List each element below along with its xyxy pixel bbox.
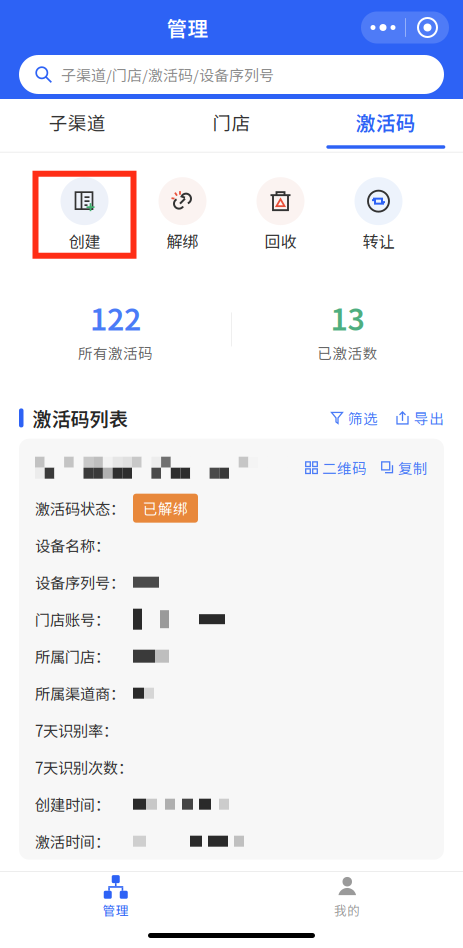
button[interactable]: 导出 [396,407,444,428]
staticText: 激活时间： [35,830,110,852]
staticText: 管理 [103,901,129,919]
button[interactable]: 复制 [381,457,428,478]
staticText: 子渠道/门店/激活码/设备序列号 [61,64,274,85]
button[interactable]: 解绑 [133,174,231,256]
staticText: 我的 [334,901,360,919]
button[interactable]: 子渠道 [0,100,154,151]
staticText: 7天识别次数： [35,756,133,778]
staticText: 门店 [212,109,250,135]
staticText: 筛选 [348,407,378,428]
button[interactable]: 子渠道/门店/激活码/设备序列号 [19,55,444,94]
staticText: 所属门店： [35,645,110,667]
staticText: 13 [330,296,364,339]
staticText: 管理 [166,13,208,42]
button[interactable]: 激活码 [309,99,463,152]
staticText: 激活码 [356,108,416,136]
staticText: 7天识别率： [35,719,118,741]
staticText: 门店账号： [35,608,110,630]
staticText: 创建 [68,229,100,252]
staticText: 设备序列号： [35,571,125,593]
staticText: 转让 [362,229,394,252]
button[interactable]: 回收 [231,174,329,256]
staticText: 创建时间： [35,793,110,815]
staticText: 122 [90,296,141,339]
staticText: 已解绑 [143,498,188,519]
staticText: 设备名称： [35,534,110,556]
button[interactable]: 创建 [35,174,133,256]
button[interactable]: 门店 [154,100,309,151]
button[interactable]: 筛选 [331,407,378,428]
staticText: 二维码 [322,457,367,478]
staticText: 子渠道 [49,109,106,135]
button[interactable]: More options [361,11,449,43]
staticText: 解绑 [166,229,198,252]
staticText: 导出 [414,407,444,428]
button[interactable]: 我的 [231,872,463,922]
button[interactable]: 管理 [0,872,231,922]
staticText: 复制 [398,457,428,478]
staticText: 激活码状态： [35,497,125,519]
staticText: 回收 [264,229,296,252]
staticText: 激活码列表 [32,404,127,432]
staticText: 所有激活码 [78,342,153,363]
button[interactable]: 转让 [329,174,427,256]
button[interactable]: 二维码 [305,457,367,478]
staticText: 已激活数 [317,342,377,363]
staticText: 所属渠道商： [35,682,125,704]
